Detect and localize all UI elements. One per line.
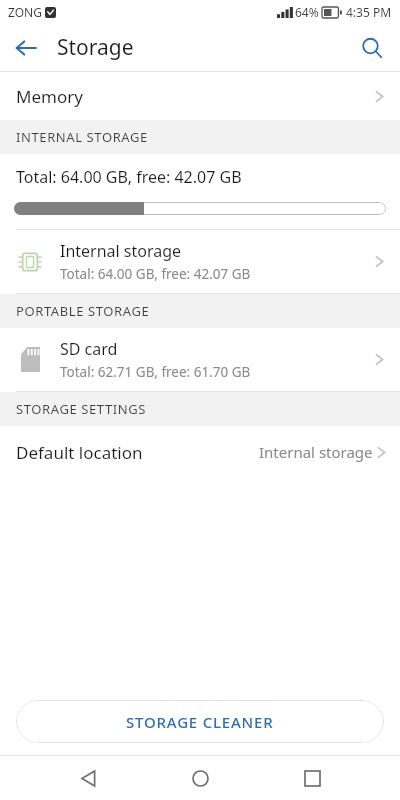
staticText: STORAGE SETTINGS: [16, 400, 147, 418]
button[interactable]: Recents: [288, 756, 336, 800]
button[interactable]: Back: [6, 28, 46, 68]
staticText: INTERNAL STORAGE: [16, 128, 148, 146]
staticText: Total: 62.71 GB, free: 61.70 GB: [60, 363, 251, 381]
button[interactable]: Internal storage: [0, 230, 400, 294]
button[interactable]: STORAGE CLEANER: [16, 700, 384, 743]
staticText: Storage: [57, 33, 134, 62]
staticText: 4:35 PM: [346, 4, 392, 20]
staticText: Total: 64.00 GB, free: 42.07 GB: [60, 265, 251, 283]
staticText: 64%: [295, 4, 319, 20]
staticText: Default location: [16, 441, 143, 464]
button[interactable]: Default location: [0, 426, 400, 478]
staticText: PORTABLE STORAGE: [16, 302, 150, 320]
button[interactable]: Back: [64, 756, 112, 800]
button[interactable]: SD card: [0, 328, 400, 392]
staticText: SD card: [60, 338, 118, 360]
staticText: Internal storage: [60, 240, 182, 262]
button[interactable]: Memory: [0, 72, 400, 120]
staticText: Internal storage: [259, 442, 373, 462]
staticText: Memory: [16, 85, 83, 108]
staticText: STORAGE CLEANER: [126, 712, 274, 732]
button[interactable]: Search: [352, 28, 392, 68]
staticText: Total: 64.00 GB, free: 42.07 GB: [16, 166, 242, 188]
button[interactable]: Home: [176, 756, 224, 800]
staticText: ZONG: [8, 4, 42, 20]
